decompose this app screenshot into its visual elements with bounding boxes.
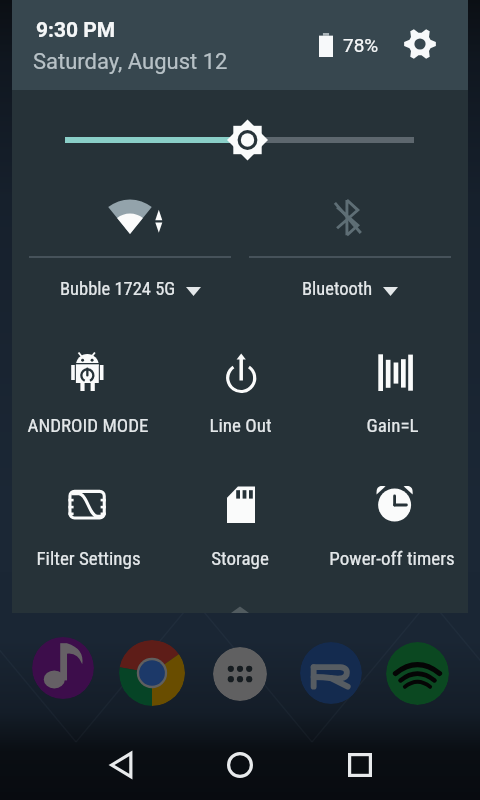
staticText: Bubble 1724 5G bbox=[60, 278, 176, 300]
staticText: Filter Settings bbox=[36, 547, 141, 569]
staticText: ANDROID MODE bbox=[27, 414, 149, 436]
staticText: Line Out bbox=[209, 414, 272, 436]
button[interactable]: Storage bbox=[164, 463, 316, 596]
staticText: Storage bbox=[211, 547, 269, 569]
button[interactable]: Power-off timers bbox=[316, 463, 468, 596]
button[interactable]: Settings bbox=[404, 28, 436, 60]
button[interactable]: Filter Settings bbox=[12, 463, 164, 596]
button[interactable]: Spotify bbox=[386, 642, 449, 705]
button[interactable]: Gain=L bbox=[316, 330, 468, 463]
button[interactable]: Recent apps bbox=[320, 730, 400, 800]
button[interactable]: Back bbox=[80, 730, 160, 800]
staticText: Gain=L bbox=[366, 414, 419, 436]
button[interactable]: Line Out bbox=[164, 330, 316, 463]
button[interactable]: Bluetooth bbox=[236, 180, 464, 310]
button[interactable]: Bubble 1724 5G bbox=[16, 180, 244, 310]
staticText: Power-off timers bbox=[329, 547, 455, 569]
staticText: 9:30 PM bbox=[36, 18, 116, 43]
button[interactable]: ANDROID MODE bbox=[12, 330, 164, 463]
button[interactable]: Music player bbox=[32, 637, 94, 699]
button[interactable]: Chrome bbox=[119, 640, 185, 706]
staticText: Bluetooth bbox=[302, 278, 373, 300]
staticText: 78% bbox=[343, 34, 379, 56]
button[interactable]: All apps bbox=[213, 647, 267, 701]
button[interactable]: Home bbox=[200, 730, 280, 800]
button[interactable]: R app bbox=[300, 642, 362, 704]
staticText: Saturday, August 12 bbox=[33, 49, 228, 75]
